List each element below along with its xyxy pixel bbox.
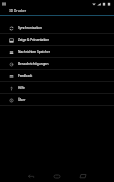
button[interactable]: Über xyxy=(0,94,114,106)
button[interactable]: Recents xyxy=(70,170,96,182)
staticText: 3D Drucker xyxy=(9,9,27,13)
staticText: Benachrichtigungen xyxy=(18,62,49,66)
staticText: Hilfe xyxy=(18,86,25,90)
button[interactable]: Synchronisation xyxy=(0,22,114,34)
button[interactable]: Zeige & Präsentation xyxy=(0,34,114,46)
staticText: Über xyxy=(18,98,26,102)
staticText: Zeige & Präsentation xyxy=(18,38,50,42)
button[interactable]: Feedback xyxy=(0,70,114,82)
staticText: Feedback xyxy=(18,74,33,78)
button[interactable]: Hilfe xyxy=(0,82,114,94)
button[interactable]: Benachrichtigungen xyxy=(0,58,114,70)
button[interactable]: Home xyxy=(44,170,70,182)
staticText: Synchronisation xyxy=(18,26,43,30)
button[interactable]: Nachrichten Speicher xyxy=(0,46,114,58)
staticText: Nachrichten Speicher xyxy=(18,50,51,54)
button[interactable]: Back xyxy=(18,170,44,182)
